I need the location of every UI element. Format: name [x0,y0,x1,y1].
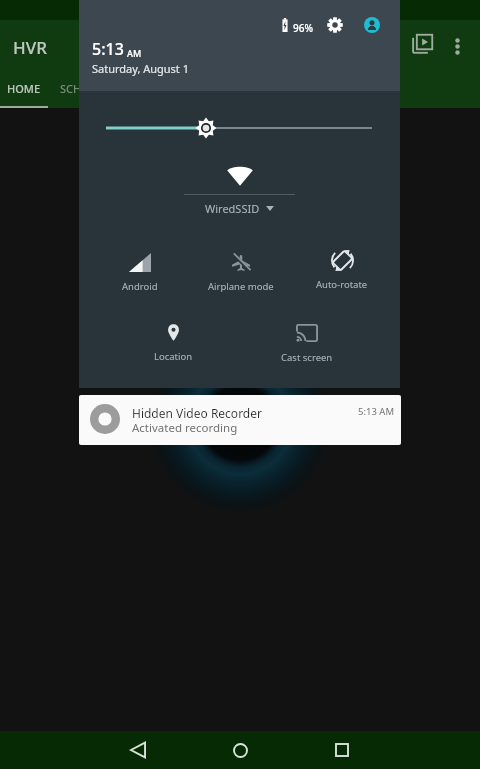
staticText: Saturday, August 1 [92,61,189,76]
staticText: Android [122,280,158,293]
button[interactable]: Settings [323,13,347,37]
button[interactable]: Video library [399,20,447,68]
staticText: AM [127,47,142,59]
staticText: 5:13 AM [358,405,395,418]
button[interactable]: Recent apps [318,731,366,769]
staticText: Auto-rotate [316,278,368,291]
button[interactable]: More options [437,26,477,66]
button[interactable]: Hidden Video Recorder [79,395,401,445]
staticText: 5:13 [92,38,124,60]
staticText: HVR [13,36,47,59]
staticText: Location [154,350,193,363]
button[interactable]: Home [216,731,264,769]
button[interactable]: Android [90,250,190,293]
button[interactable]: Brightness [79,113,400,143]
staticText: 96% [293,21,313,35]
staticText: Hidden Video Recorder [132,405,262,421]
staticText: Activated recording [132,420,238,436]
button[interactable]: Location [123,320,223,363]
button[interactable]: Auto-rotate [292,248,392,291]
button[interactable]: Airplane mode [191,250,291,293]
staticText: HOME [7,81,41,96]
staticText: Airplane mode [208,280,274,293]
button[interactable]: Wi-Fi [79,165,400,216]
staticText: SCHEDULE [60,81,116,96]
staticText: WiredSSID [205,201,260,216]
button[interactable]: User [364,17,380,33]
button[interactable]: HOME [0,76,48,108]
button[interactable]: Back [114,731,162,769]
staticText: Cast screen [281,351,333,364]
button[interactable]: Cast screen [257,321,357,364]
button[interactable]: SCHEDULE [48,76,128,108]
